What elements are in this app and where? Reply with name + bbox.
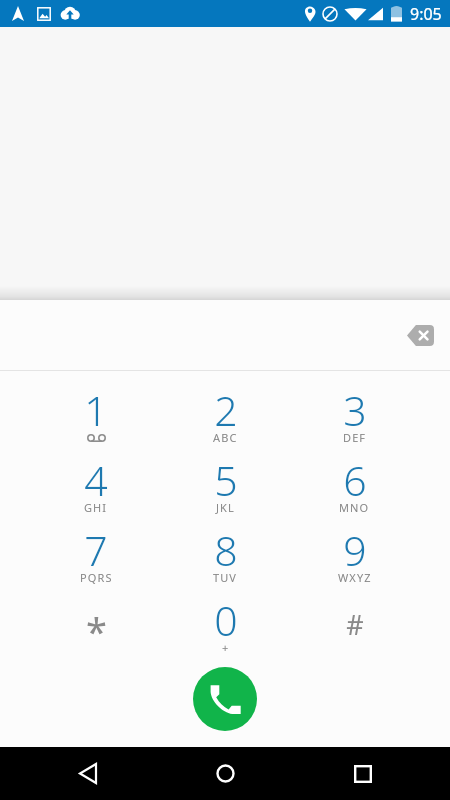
button[interactable]: Recents <box>294 747 431 800</box>
staticText: 6 <box>343 452 367 508</box>
button[interactable]: 2 <box>161 385 290 455</box>
staticText: + <box>222 640 230 655</box>
button[interactable]: Phone number <box>0 300 450 370</box>
button[interactable]: 8 <box>161 525 290 595</box>
button[interactable]: Backspace <box>398 313 442 357</box>
staticText: TUV <box>213 570 238 585</box>
staticText: WXYZ <box>338 570 372 585</box>
button[interactable]: 0 <box>161 595 290 665</box>
staticText: JKL <box>216 500 235 515</box>
button[interactable]: 4 <box>31 455 161 525</box>
button[interactable]: 6 <box>290 455 419 525</box>
button[interactable]: Call <box>193 667 257 731</box>
button[interactable]: Back <box>19 747 157 800</box>
staticText: MNO <box>339 500 370 515</box>
staticText: DEF <box>343 430 367 445</box>
button[interactable]: 9 <box>290 525 419 595</box>
button[interactable]: # <box>290 595 419 665</box>
staticText: 3 <box>343 382 367 438</box>
button[interactable]: * <box>31 595 161 665</box>
staticText: PQRS <box>80 570 113 585</box>
button[interactable]: 5 <box>161 455 290 525</box>
staticText: 4 <box>84 452 108 508</box>
button[interactable]: 7 <box>31 525 161 595</box>
staticText: 1 <box>84 382 108 438</box>
staticText: 9 <box>343 522 367 578</box>
button[interactable]: 1 <box>31 385 161 455</box>
staticText: 0 <box>214 592 238 648</box>
staticText: GHI <box>84 500 108 515</box>
button[interactable]: 3 <box>290 385 419 455</box>
staticText: ABC <box>213 430 238 445</box>
staticText: 9:05 <box>410 3 442 25</box>
staticText: * <box>86 605 107 657</box>
staticText: # <box>346 606 364 643</box>
staticText: 2 <box>214 382 238 438</box>
button[interactable]: Home <box>157 747 294 800</box>
staticText: 5 <box>214 452 238 508</box>
staticText: 7 <box>84 522 108 578</box>
staticText: 8 <box>214 522 238 578</box>
